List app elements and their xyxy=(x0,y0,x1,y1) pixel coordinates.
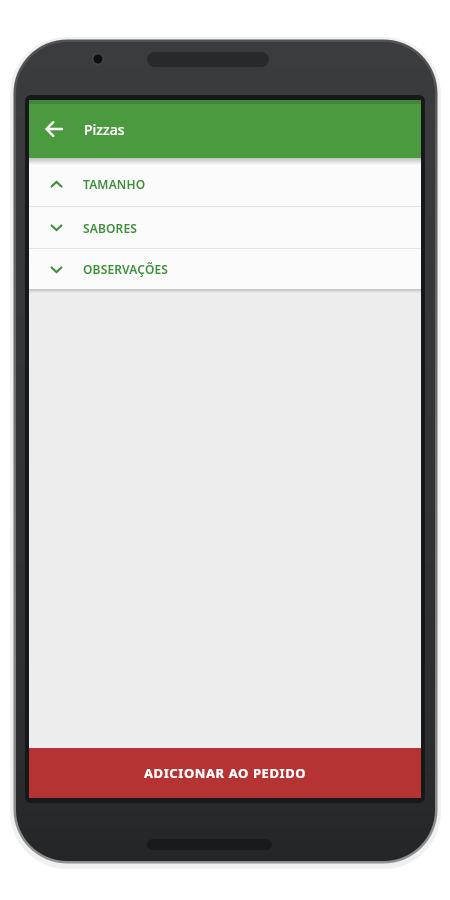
staticText: OBSERVAÇÕES xyxy=(83,261,169,277)
staticText: TAMANHO xyxy=(83,176,146,192)
staticText: Pizzas xyxy=(84,120,125,139)
staticText: SABORES xyxy=(83,220,138,236)
staticText: ADICIONAR AO PEDIDO xyxy=(144,764,307,782)
